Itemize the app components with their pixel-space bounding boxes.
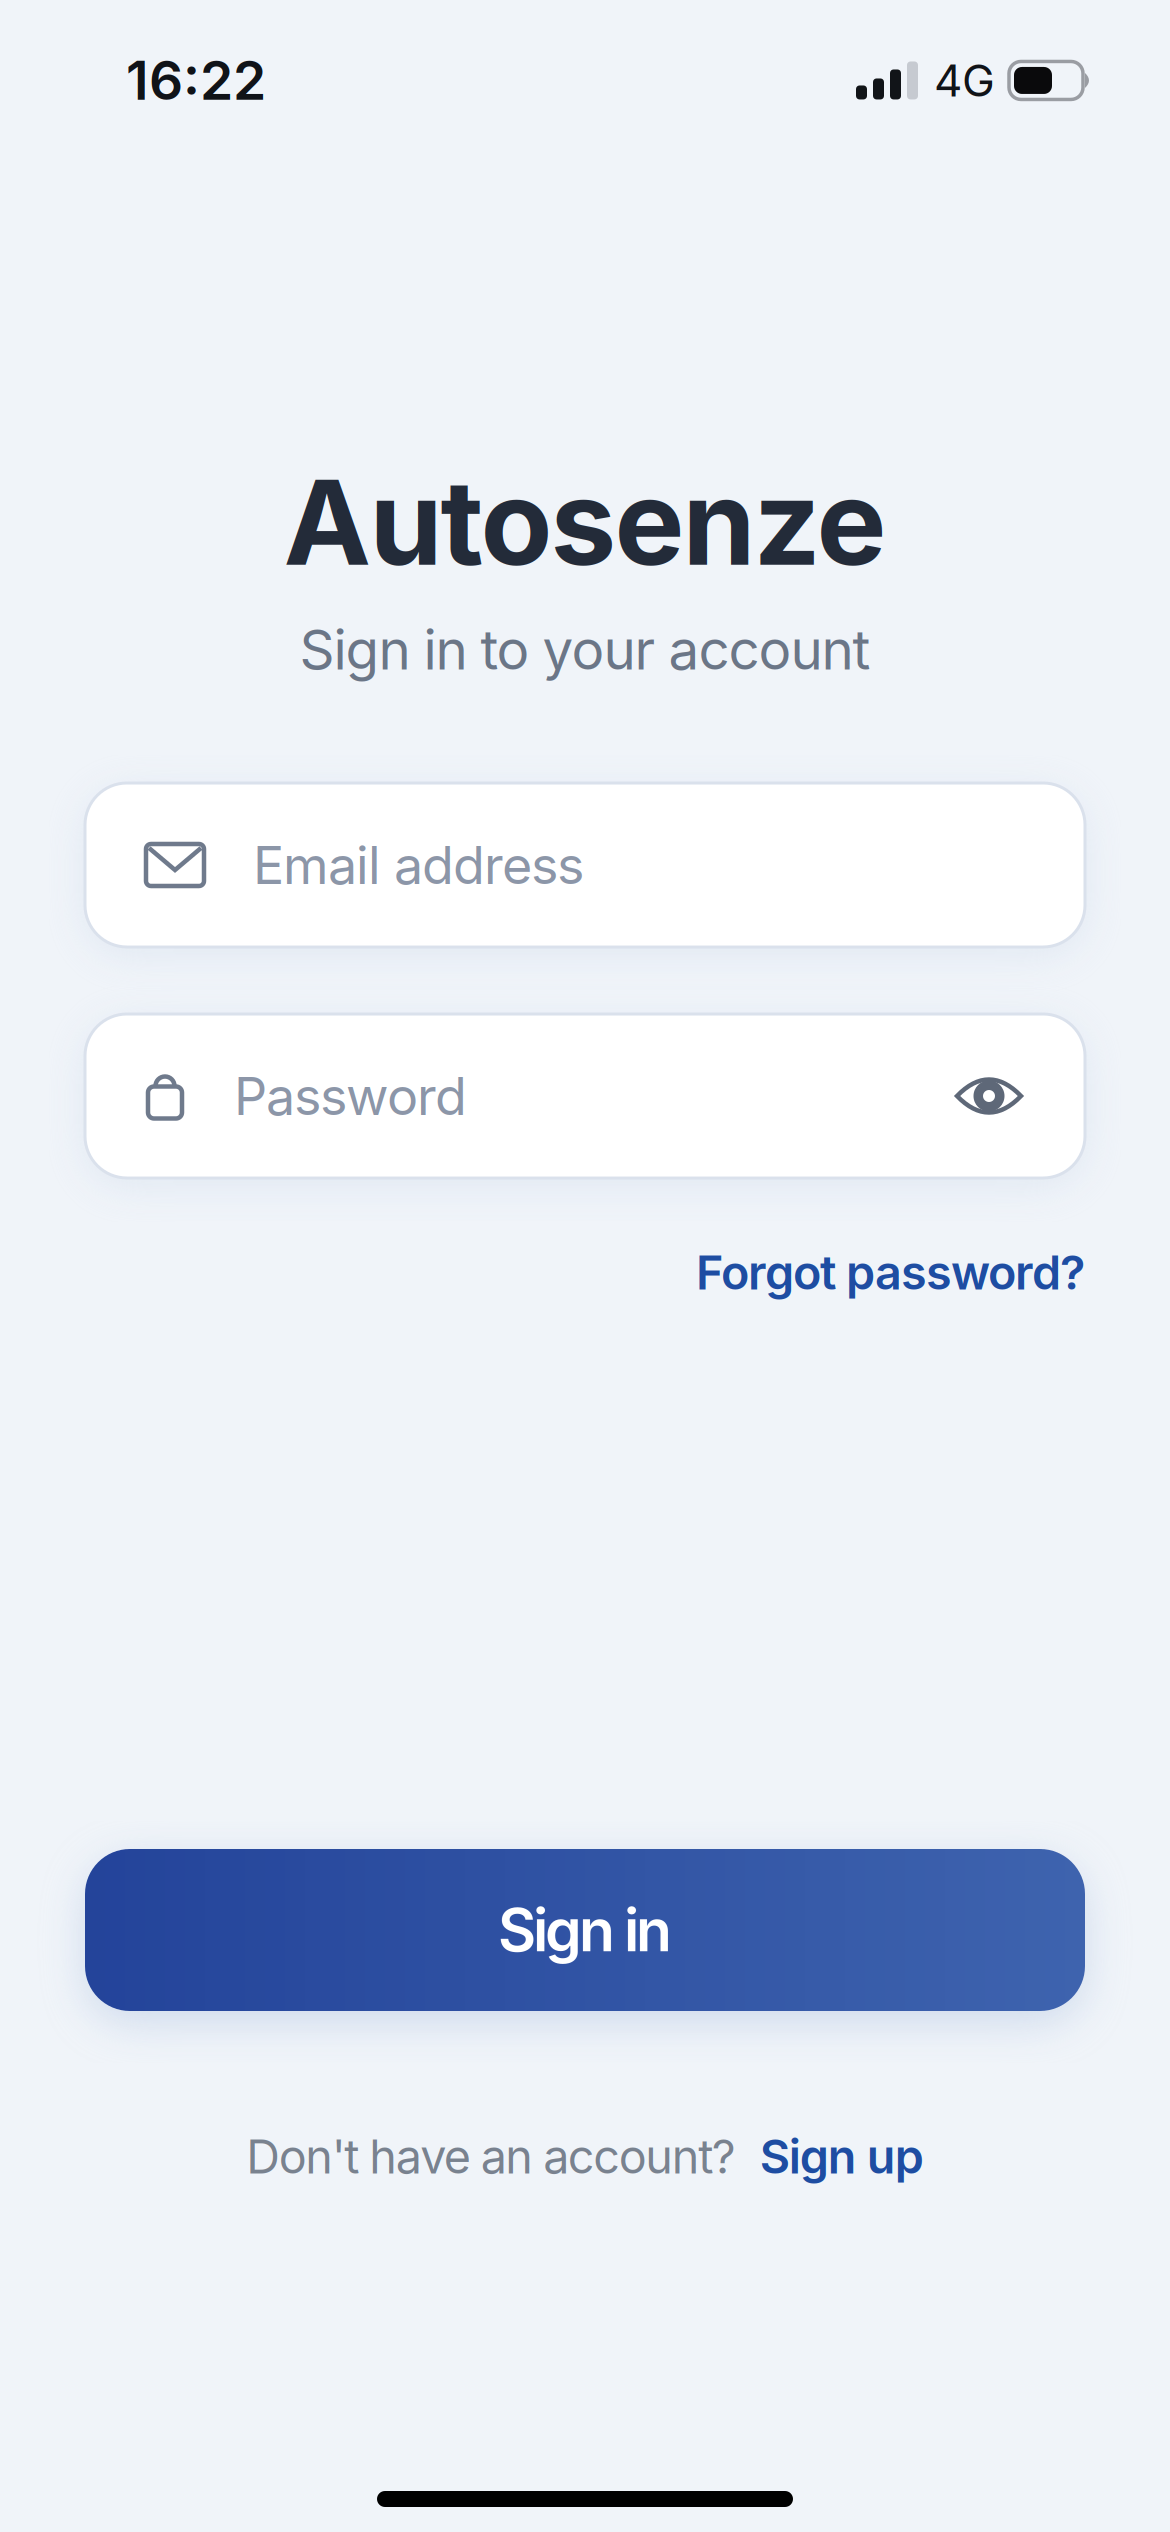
staticText: Password (234, 1065, 467, 1127)
staticText: Autosenze (283, 453, 886, 591)
staticText: Sign up (760, 2129, 924, 2184)
staticText: Don't have an account? (246, 2129, 736, 2184)
button[interactable]: Sign up (760, 2129, 924, 2184)
staticText: 16:22 (126, 49, 266, 112)
staticText: Sign in (498, 1895, 672, 1965)
staticText: Email address (253, 834, 584, 896)
staticText: Sign in to your account (299, 617, 870, 682)
button[interactable]: Password (85, 1014, 1085, 1178)
button[interactable]: Email address (85, 783, 1085, 947)
staticText: 4G (934, 54, 995, 106)
button[interactable]: Sign in (85, 1849, 1085, 2011)
button[interactable]: Forgot password? (696, 1245, 1085, 1300)
staticText: Forgot password? (696, 1245, 1085, 1300)
button[interactable]: Show password (955, 1075, 1023, 1117)
